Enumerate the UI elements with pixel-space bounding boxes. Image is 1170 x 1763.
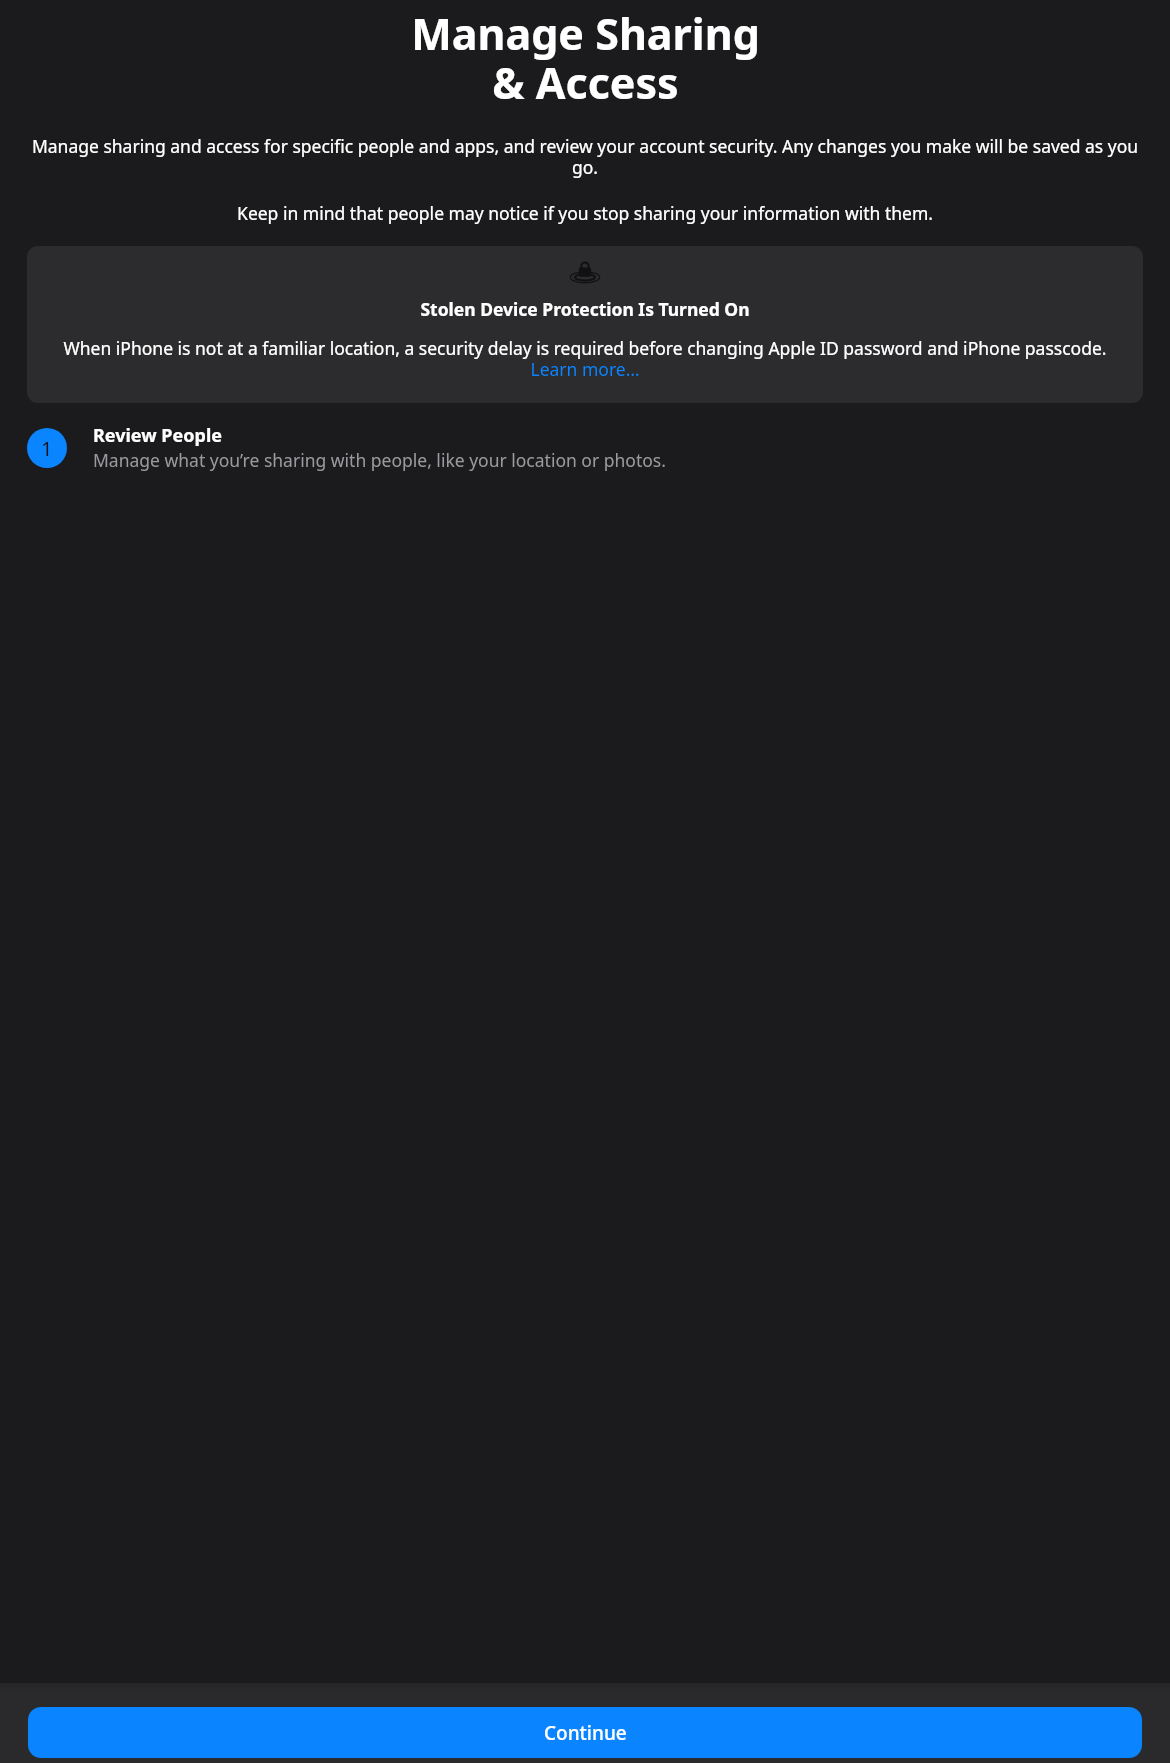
button[interactable]: 1 bbox=[27, 423, 1143, 472]
staticText: Stolen Device Protection Is Turned On bbox=[420, 297, 750, 321]
staticText: Manage sharing and access for specific p… bbox=[27, 134, 1143, 179]
staticText: Manage Sharing & Access bbox=[411, 4, 760, 112]
button[interactable]: Continue bbox=[28, 1707, 1142, 1758]
staticText: Review People bbox=[93, 423, 222, 448]
staticText: 1 bbox=[41, 435, 53, 462]
staticText: When iPhone is not at a familiar locatio… bbox=[41, 336, 1129, 381]
other: Stolen Device Protection bbox=[569, 261, 601, 283]
staticText: Manage what you’re sharing with people, … bbox=[93, 448, 666, 472]
staticText: Keep in mind that people may notice if y… bbox=[237, 201, 933, 225]
staticText: Continue bbox=[544, 1720, 627, 1746]
